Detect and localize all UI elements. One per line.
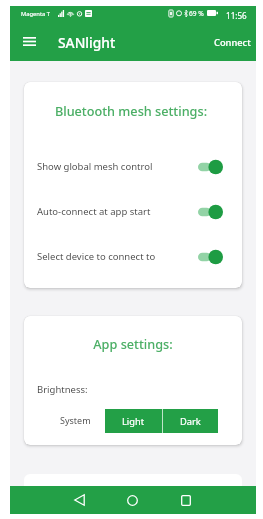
staticText: Bluetooth mesh settings: bbox=[24, 102, 240, 119]
staticText: Select device to connect to bbox=[37, 250, 156, 263]
staticText: Show global mesh control bbox=[37, 160, 153, 173]
button[interactable]: Select device to connect to bbox=[24, 234, 242, 279]
button[interactable]: Light bbox=[105, 409, 162, 433]
staticText: Connect bbox=[214, 36, 251, 49]
button[interactable]: Recent apps bbox=[168, 486, 203, 514]
staticText: Light bbox=[122, 415, 145, 428]
staticText: 69 % bbox=[189, 9, 204, 18]
staticText: Auto-connect at app start bbox=[37, 205, 151, 218]
button[interactable]: Show global mesh control bbox=[24, 144, 242, 189]
staticText: System bbox=[60, 414, 91, 426]
button[interactable]: Home bbox=[115, 486, 150, 514]
button[interactable]: Back bbox=[62, 486, 97, 514]
button[interactable]: Connect bbox=[209, 20, 256, 61]
staticText: Brightness: bbox=[37, 383, 88, 396]
button[interactable]: System bbox=[53, 408, 98, 432]
button[interactable]: Auto-connect at app start bbox=[24, 189, 242, 234]
staticText: 11:56 bbox=[226, 10, 247, 21]
staticText: App settings: bbox=[24, 335, 242, 352]
staticText: Magenta T bbox=[21, 10, 51, 18]
button[interactable]: Dark bbox=[163, 409, 218, 433]
staticText: SANlight bbox=[58, 33, 116, 52]
button[interactable]: Open navigation menu bbox=[16, 20, 42, 61]
staticText: Dark bbox=[180, 415, 201, 428]
